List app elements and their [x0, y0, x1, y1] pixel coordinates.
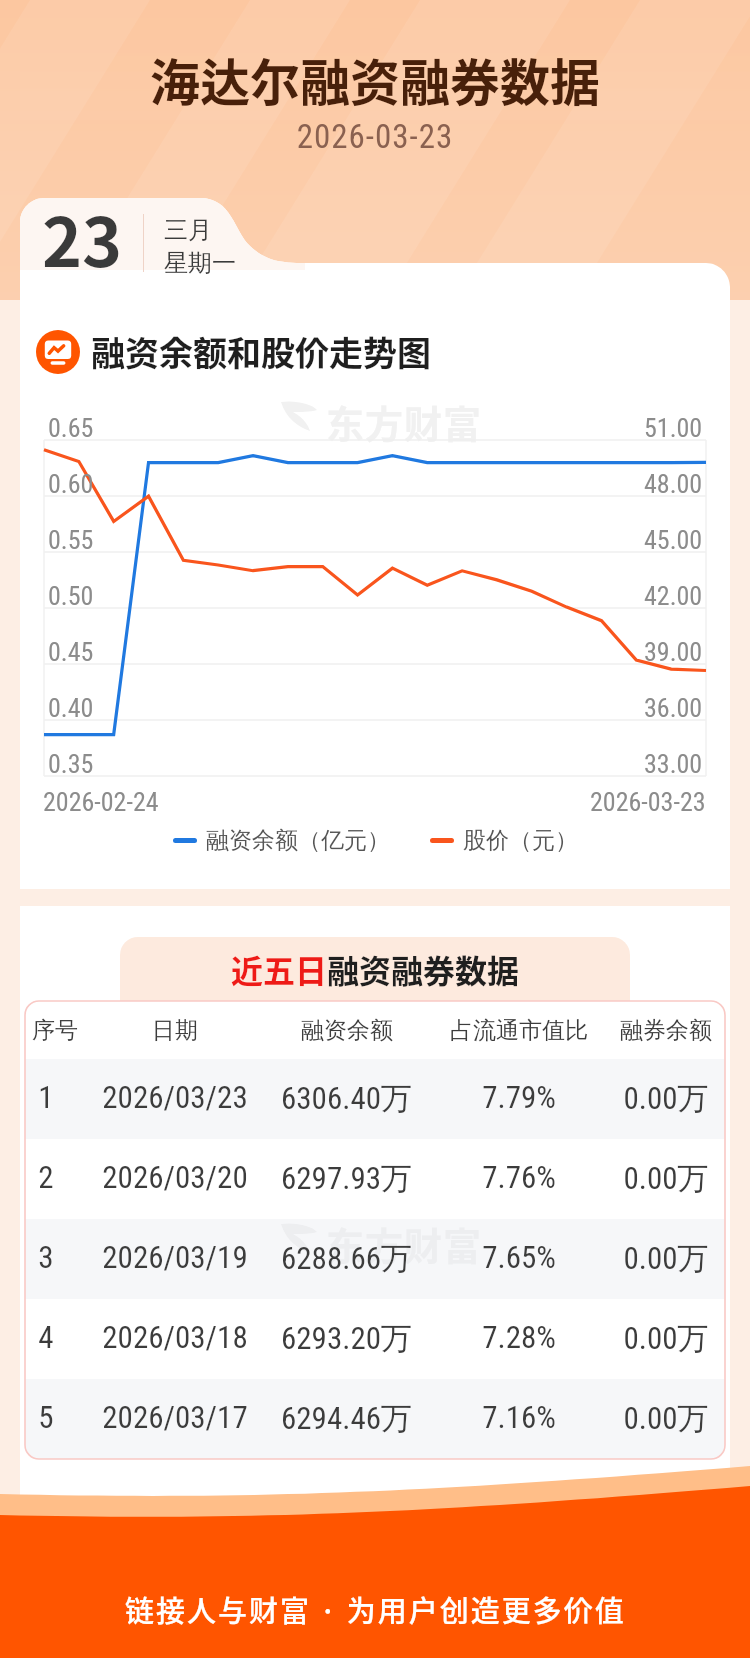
staticText: 7.28%: [482, 1319, 556, 1355]
staticText: 7.65%: [482, 1239, 556, 1275]
staticText: 东方财富: [326, 1216, 483, 1271]
button[interactable]: 走势图: [36, 327, 431, 376]
staticText: 链接人与财富 · 为用户创造更多价值: [125, 1588, 626, 1630]
staticText: 51.00: [644, 413, 703, 443]
staticText: 45.00: [644, 525, 703, 555]
staticText: 日期: [152, 1016, 198, 1045]
staticText: 2026-03-23: [0, 117, 750, 156]
staticText: 5: [38, 1399, 54, 1435]
staticText: 39.00: [644, 637, 703, 667]
staticText: 2026/03/17: [102, 1399, 248, 1435]
staticText: 0.45: [48, 637, 94, 667]
staticText: 23: [42, 188, 123, 286]
staticText: 7.16%: [482, 1399, 556, 1435]
staticText: 48.00: [644, 469, 703, 499]
staticText: 序号: [32, 1016, 78, 1045]
staticText: 7.79%: [482, 1079, 556, 1115]
staticText: 6288.66万: [281, 1239, 412, 1278]
other: 走势图: [36, 330, 80, 374]
staticText: 融券余额: [620, 1016, 712, 1045]
staticText: 0.00万: [623, 1239, 709, 1278]
staticText: 0.65: [48, 413, 94, 443]
staticText: 融资余额和股价走势图: [91, 327, 431, 376]
staticText: 2: [38, 1159, 54, 1195]
staticText: 股价（元）: [463, 826, 578, 855]
staticText: 6306.40万: [281, 1079, 412, 1118]
staticText: 三月: [164, 215, 212, 245]
staticText: 占流通市值比: [450, 1016, 588, 1045]
staticText: 4: [38, 1319, 54, 1355]
staticText: 0.40: [48, 693, 94, 723]
staticText: 6293.20万: [281, 1319, 412, 1358]
staticText: 2026/03/19: [102, 1239, 248, 1275]
staticText: 7.76%: [482, 1159, 556, 1195]
staticText: 36.00: [644, 693, 703, 723]
staticText: 星期一: [164, 248, 236, 278]
staticText: 6294.46万: [281, 1399, 412, 1438]
staticText: 0.00万: [623, 1079, 709, 1118]
staticText: 近五日融资融券数据: [231, 946, 520, 992]
staticText: 0.00万: [623, 1159, 709, 1198]
staticText: 0.60: [48, 469, 94, 499]
staticText: 2026/03/20: [102, 1159, 248, 1195]
staticText: 0.35: [48, 749, 94, 779]
staticText: 2026-02-24: [43, 787, 159, 817]
staticText: 0.50: [48, 581, 94, 611]
staticText: 3: [38, 1239, 54, 1275]
staticText: 6297.93万: [281, 1159, 412, 1198]
staticText: 2026/03/23: [102, 1079, 248, 1115]
staticText: 2026-03-23: [590, 787, 706, 817]
staticText: 0.00万: [623, 1399, 709, 1438]
staticText: 融资余额（亿元）: [206, 826, 390, 855]
staticText: 42.00: [644, 581, 703, 611]
staticText: 0.00万: [623, 1319, 709, 1358]
staticText: 东方财富: [326, 394, 483, 449]
staticText: 海达尔融资融券数据: [0, 43, 750, 115]
staticText: 0.55: [48, 525, 94, 555]
staticText: 1: [38, 1079, 54, 1115]
staticText: 融资余额: [301, 1016, 393, 1045]
staticText: 33.00: [644, 749, 703, 779]
staticText: 2026/03/18: [102, 1319, 248, 1355]
